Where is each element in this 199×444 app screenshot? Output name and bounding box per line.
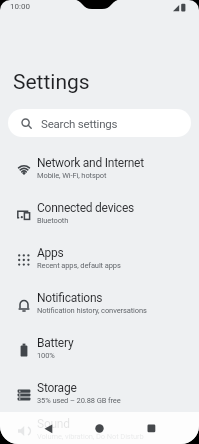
staticText: Settings bbox=[13, 70, 90, 95]
button[interactable] bbox=[147, 424, 156, 433]
button[interactable]: Search settings bbox=[8, 109, 191, 137]
button[interactable]: Network and Internet bbox=[0, 145, 199, 190]
button[interactable]: Apps bbox=[0, 235, 199, 280]
button[interactable]: Battery bbox=[0, 325, 199, 370]
staticText: Notification history, conversations bbox=[37, 306, 147, 315]
staticText: Apps bbox=[37, 246, 64, 260]
staticText: Connected devices bbox=[37, 201, 134, 215]
button[interactable]: Connected devices bbox=[0, 190, 199, 235]
button[interactable]: Notifications bbox=[0, 280, 199, 325]
button[interactable]: Storage bbox=[0, 370, 199, 415]
staticText: 100% bbox=[37, 351, 55, 360]
staticText: Network and Internet bbox=[37, 156, 144, 170]
button[interactable]: Sound bbox=[0, 406, 199, 444]
staticText: Search settings bbox=[41, 117, 118, 130]
staticText: Battery bbox=[37, 336, 74, 350]
staticText: 10:00 bbox=[10, 2, 30, 11]
staticText: Volume, vibration, Do Not Disturb bbox=[37, 432, 144, 441]
button[interactable] bbox=[95, 424, 105, 434]
button[interactable] bbox=[44, 424, 53, 434]
staticText: Bluetooth bbox=[37, 216, 69, 225]
staticText: 35% used – 20.88 GB free bbox=[37, 396, 121, 405]
staticText: Notifications bbox=[37, 291, 103, 305]
staticText: Sound bbox=[37, 417, 70, 431]
staticText: Mobile, Wi-Fi, hotspot bbox=[37, 171, 107, 180]
staticText: Storage bbox=[37, 381, 77, 395]
staticText: Recent apps, default apps bbox=[37, 261, 121, 270]
